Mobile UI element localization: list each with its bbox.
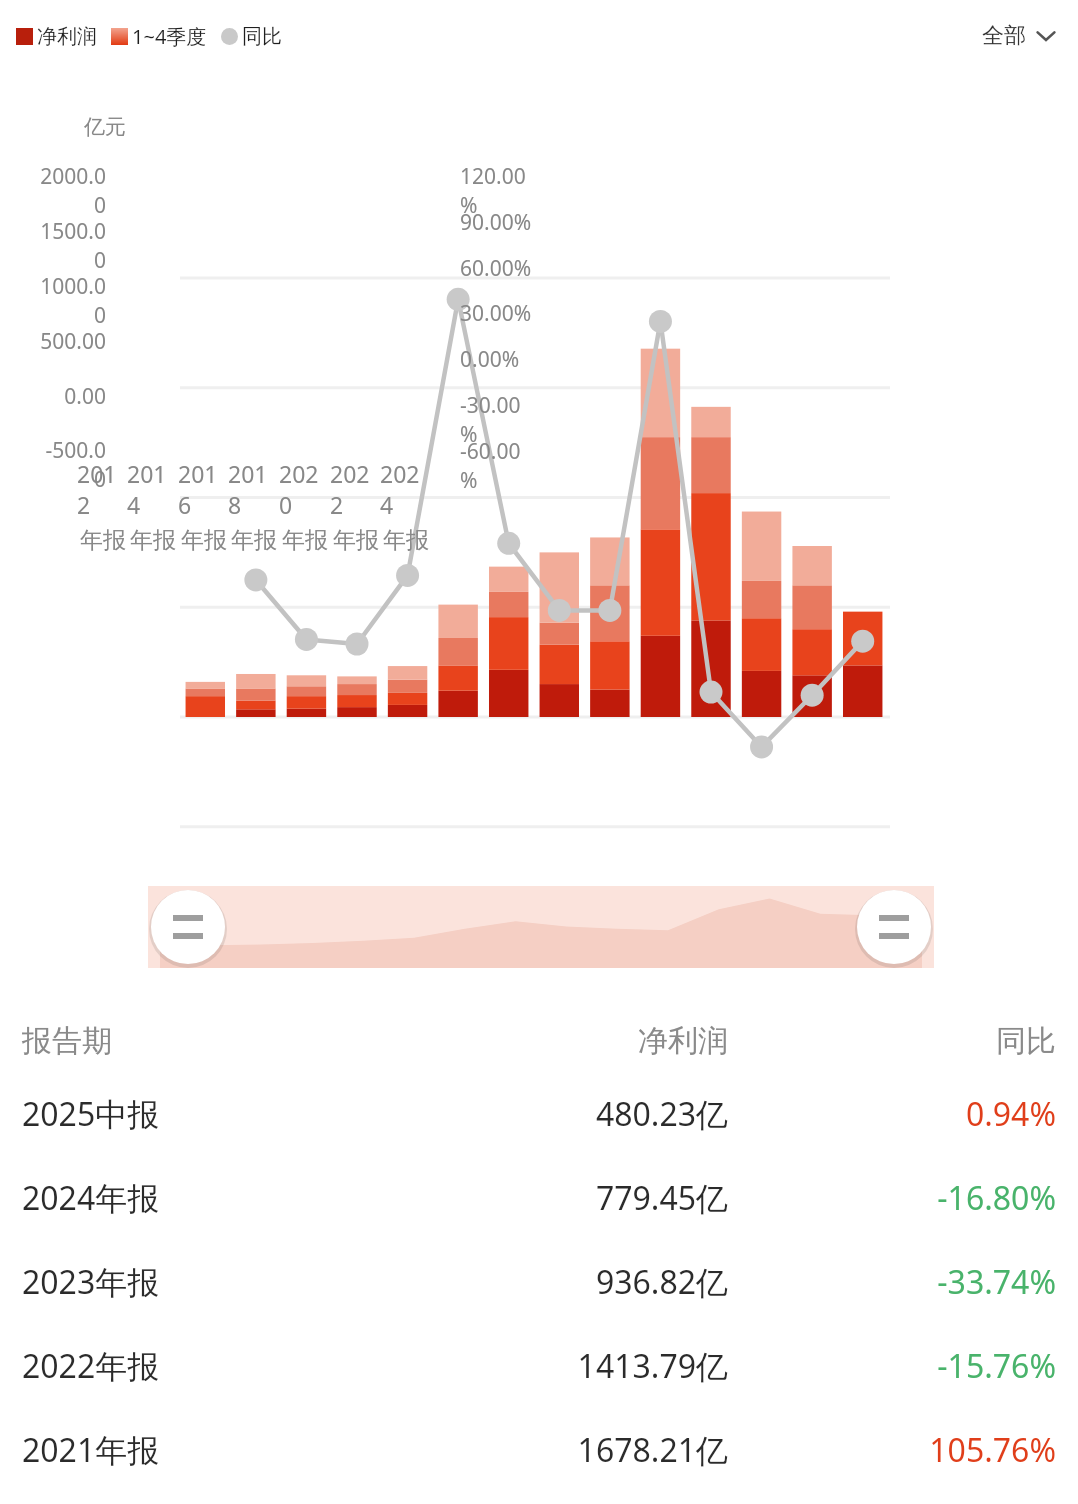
staticText: 936.82亿 bbox=[351, 1260, 728, 1304]
staticText: 0.94% bbox=[728, 1092, 1056, 1136]
staticText: 2023年报 bbox=[22, 1260, 351, 1304]
staticText: 1000.00 bbox=[40, 272, 106, 330]
staticText: 1~4季度 bbox=[132, 23, 207, 50]
button[interactable]: 2023年报 bbox=[0, 1240, 1078, 1324]
staticText: 2022年报 bbox=[22, 1344, 351, 1388]
staticText: 2022 bbox=[330, 458, 382, 520]
staticText: 1500.00 bbox=[40, 217, 106, 275]
staticText: 1678.21亿 bbox=[351, 1428, 728, 1472]
staticText: 2018 bbox=[228, 458, 280, 520]
staticText: 2021年报 bbox=[22, 1428, 351, 1472]
staticText: 500.00 bbox=[40, 327, 106, 356]
staticText: 2020 bbox=[279, 458, 331, 520]
staticText: 年报 bbox=[333, 526, 379, 555]
staticText: 105.76% bbox=[728, 1428, 1056, 1472]
button[interactable]: 2025中报 bbox=[0, 1072, 1078, 1156]
staticText: 年报 bbox=[383, 526, 429, 555]
staticText: 2016 bbox=[178, 458, 230, 520]
staticText: 90.00% bbox=[460, 208, 532, 237]
staticText: -15.76% bbox=[728, 1344, 1056, 1388]
staticText: 2014 bbox=[127, 458, 179, 520]
staticText: 2000.00 bbox=[40, 162, 106, 220]
staticText: 60.00% bbox=[460, 254, 532, 283]
staticText: 0.00% bbox=[460, 345, 532, 374]
staticText: 年报 bbox=[80, 526, 126, 555]
staticText: -60.00% bbox=[460, 437, 532, 495]
staticText: 年报 bbox=[231, 526, 277, 555]
button[interactable]: 2021年报 bbox=[0, 1408, 1078, 1492]
staticText: 净利润 bbox=[351, 1022, 728, 1060]
button[interactable]: 2024年报 bbox=[0, 1156, 1078, 1240]
staticText: 779.45亿 bbox=[351, 1176, 728, 1220]
staticText: 报告期 bbox=[22, 1022, 351, 1060]
staticText: 2024年报 bbox=[22, 1176, 351, 1220]
button[interactable]: 全部 bbox=[978, 18, 1060, 54]
staticText: 1413.79亿 bbox=[351, 1344, 728, 1388]
staticText: 120.00% bbox=[460, 162, 532, 220]
staticText: 480.23亿 bbox=[351, 1092, 728, 1136]
staticText: 30.00% bbox=[460, 299, 532, 328]
staticText: 年报 bbox=[130, 526, 176, 555]
staticText: 净利润 bbox=[37, 24, 97, 49]
staticText: -33.74% bbox=[728, 1260, 1056, 1304]
staticText: -500.00 bbox=[40, 436, 106, 494]
staticText: 2024 bbox=[380, 458, 432, 520]
staticText: 同比 bbox=[242, 24, 282, 49]
staticText: -16.80% bbox=[728, 1176, 1056, 1220]
staticText: 全部 bbox=[982, 22, 1026, 50]
staticText: 亿元 bbox=[84, 114, 126, 140]
staticText: 年报 bbox=[282, 526, 328, 555]
staticText: 年报 bbox=[181, 526, 227, 555]
staticText: -30.00% bbox=[460, 391, 532, 449]
staticText: 2012 bbox=[77, 458, 129, 520]
staticText: 同比 bbox=[728, 1022, 1056, 1060]
staticText: 2025中报 bbox=[22, 1092, 351, 1136]
button[interactable]: 2022年报 bbox=[0, 1324, 1078, 1408]
staticText: 0.00 bbox=[40, 382, 106, 411]
